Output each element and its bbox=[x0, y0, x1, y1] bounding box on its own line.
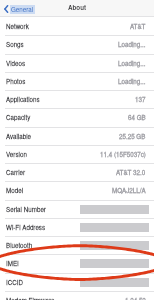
staticText: Capacity bbox=[6, 113, 31, 122]
staticText: 1.04.50 bbox=[125, 296, 146, 300]
staticText: Model bbox=[6, 186, 24, 195]
button[interactable]: Available bbox=[0, 127, 154, 145]
staticText: General bbox=[11, 5, 34, 14]
staticText: Applications bbox=[6, 95, 40, 104]
button[interactable]: Videos bbox=[0, 54, 154, 72]
staticText: 64 GB bbox=[128, 113, 146, 122]
staticText: Loading... bbox=[118, 40, 146, 49]
staticText: Wi-Fi Address bbox=[6, 223, 46, 232]
button[interactable]: Serial Number bbox=[0, 200, 154, 218]
button[interactable]: IMEI bbox=[0, 254, 154, 272]
button[interactable]: Version bbox=[0, 145, 154, 163]
staticText: Version bbox=[6, 150, 27, 159]
staticText: 137 bbox=[135, 95, 146, 104]
staticText: Carrier bbox=[6, 168, 26, 177]
staticText: About bbox=[68, 3, 87, 12]
staticText: Songs bbox=[6, 40, 24, 49]
button[interactable]: Bluetooth bbox=[0, 236, 154, 254]
staticText: Serial Number bbox=[6, 205, 46, 214]
button[interactable]: Modem Firmware bbox=[0, 291, 154, 300]
button[interactable]: Carrier bbox=[0, 163, 154, 181]
button[interactable]: Capacity bbox=[0, 108, 154, 126]
button[interactable]: ICCID bbox=[0, 273, 154, 291]
button[interactable]: Photos bbox=[0, 72, 154, 90]
button[interactable]: Wi-Fi Address bbox=[0, 218, 154, 236]
staticText: 11.4 (15F5037c) bbox=[100, 150, 146, 159]
staticText: AT&T 32.0 bbox=[116, 168, 146, 177]
staticText: IMEI bbox=[6, 259, 19, 268]
staticText: ICCID bbox=[6, 278, 24, 287]
staticText: Photos bbox=[6, 77, 26, 86]
staticText: Loading... bbox=[118, 77, 146, 86]
staticText: AT&T bbox=[130, 22, 146, 31]
staticText: MQAJ2LL/A bbox=[112, 186, 146, 195]
button[interactable]: General bbox=[0, 4, 39, 13]
staticText: Network bbox=[6, 22, 29, 31]
staticText: Videos bbox=[6, 59, 26, 68]
staticText: Available bbox=[6, 132, 32, 141]
staticText: 25.25 GB bbox=[119, 132, 146, 141]
staticText: Modem Firmware bbox=[6, 296, 55, 300]
button[interactable]: Songs bbox=[0, 35, 154, 53]
staticText: Bluetooth bbox=[6, 241, 33, 250]
button[interactable]: Model bbox=[0, 181, 154, 199]
button[interactable]: Applications bbox=[0, 90, 154, 108]
button[interactable]: Network bbox=[0, 17, 154, 35]
staticText: Loading... bbox=[118, 59, 146, 68]
